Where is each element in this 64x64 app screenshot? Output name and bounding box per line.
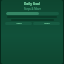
button[interactable]: Daily Goal — [8, 2, 56, 6]
staticText: Steps & Move — [24, 7, 41, 11]
staticText: Daily Goal — [24, 2, 40, 6]
button[interactable]: Daily Goal — [1, 0, 63, 64]
button[interactable]: More — [33, 22, 60, 25]
button[interactable]: Start — [5, 22, 32, 25]
staticText: Start — [16, 22, 22, 25]
staticText: More — [44, 22, 50, 25]
button[interactable]: Activity progress — [6, 12, 59, 15]
button[interactable]: Steps & Move — [13, 7, 51, 11]
